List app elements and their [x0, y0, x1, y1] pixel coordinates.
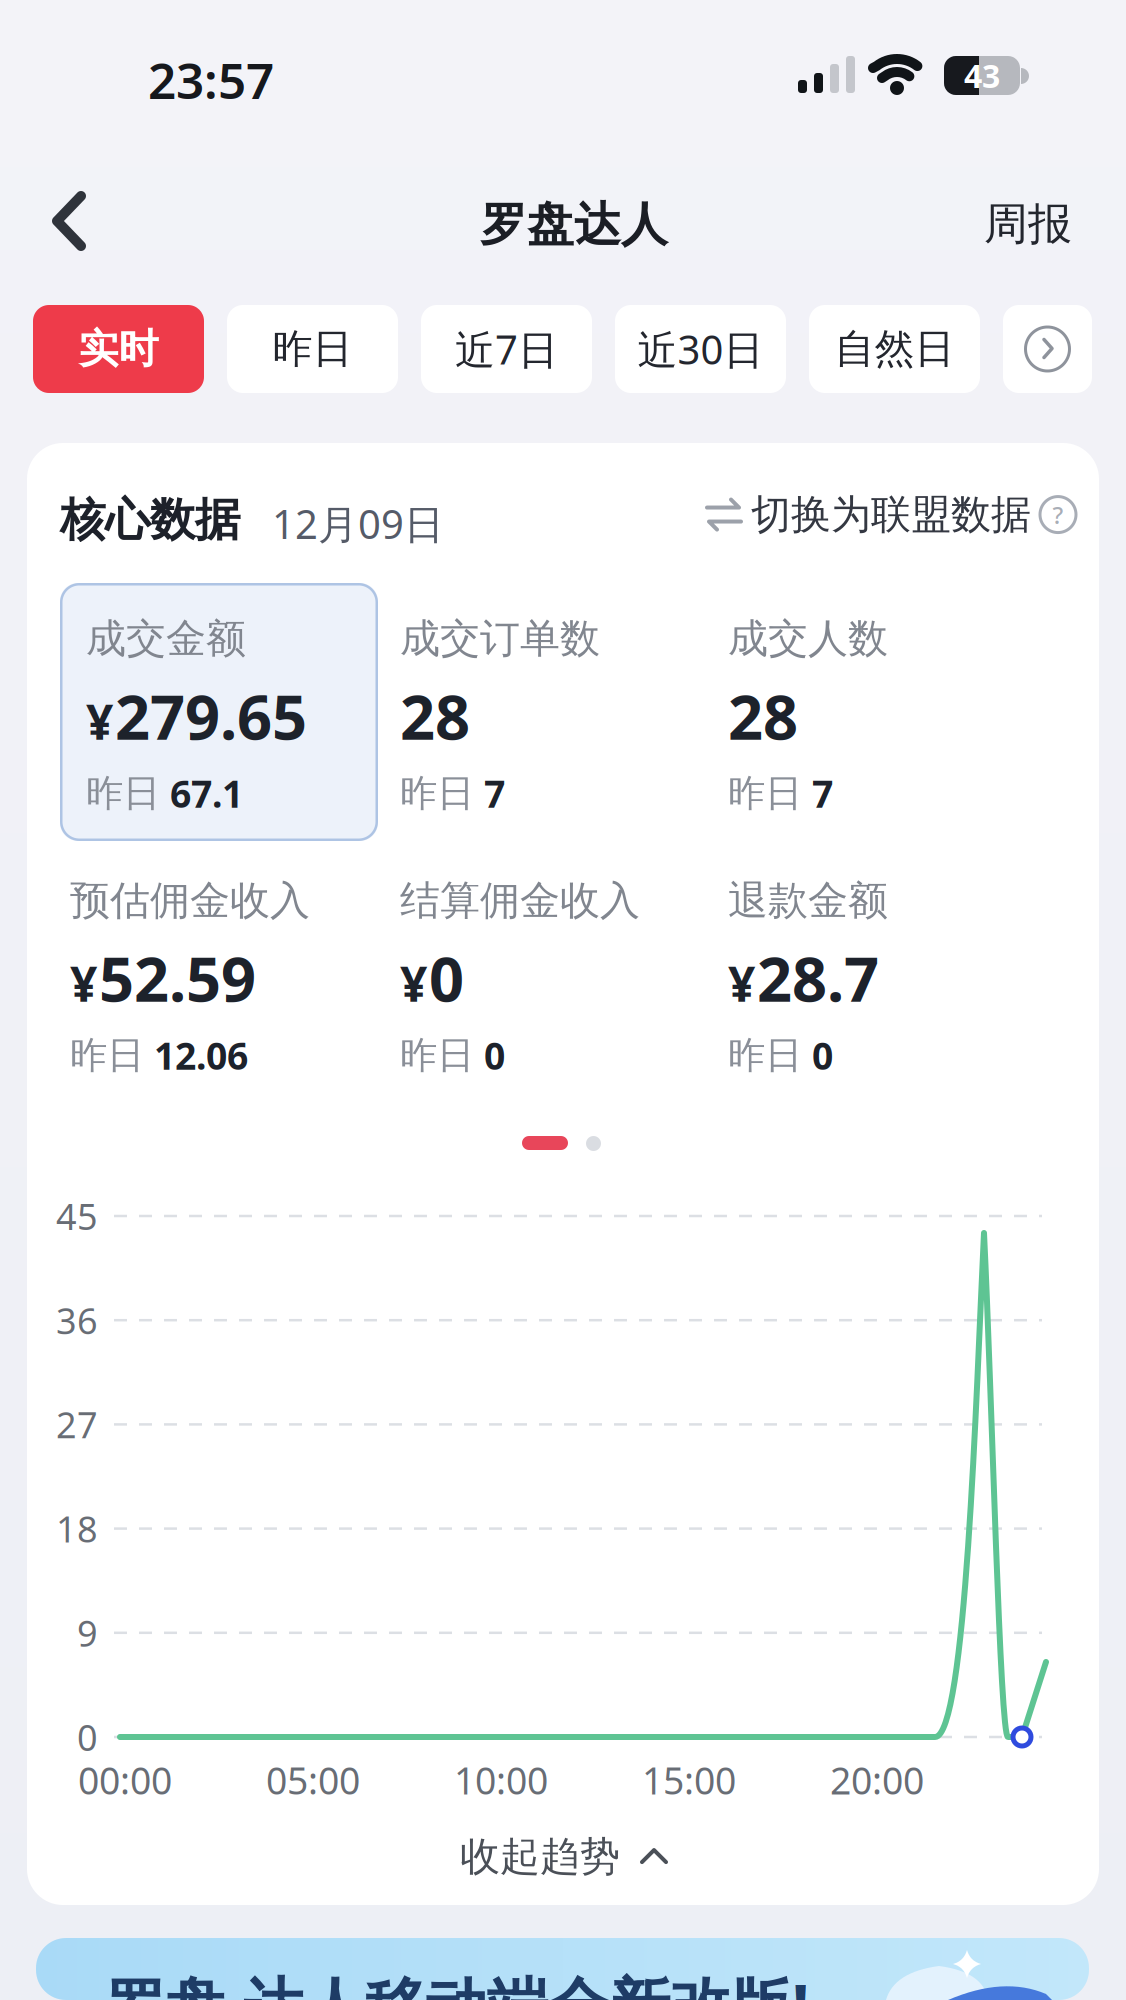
button[interactable]: 预估佣金收入: [70, 876, 310, 1080]
button[interactable]: 退款金额: [728, 876, 888, 1080]
staticText: 279.65: [115, 675, 307, 756]
staticText: 18: [56, 1505, 98, 1552]
button[interactable]: 更多筛选: [1003, 305, 1092, 393]
staticText: 昨日: [400, 770, 474, 816]
staticText: 周报: [984, 197, 1072, 251]
staticText: 52.59: [99, 937, 256, 1018]
button[interactable]: 近7日: [421, 305, 592, 393]
staticText: 昨日: [728, 1032, 802, 1078]
staticText: 7: [812, 769, 833, 818]
staticText: 7: [484, 769, 505, 818]
staticText: 昨日: [272, 324, 352, 373]
staticText: 昨日: [728, 770, 802, 816]
staticText: 10:00: [454, 1755, 548, 1805]
staticText: 23:57: [148, 47, 274, 112]
staticText: 00:00: [78, 1755, 172, 1805]
staticText: 罗盘·达人移动端全新改版!: [104, 1964, 809, 2000]
staticText: ¥: [728, 951, 755, 1015]
button[interactable]: 昨日: [227, 305, 398, 393]
staticText: 实时: [78, 324, 158, 373]
staticText: 自然日: [834, 324, 954, 373]
staticText: 成交人数: [728, 614, 888, 663]
button[interactable]: 结算佣金收入: [400, 876, 640, 1080]
staticText: 昨日: [86, 770, 160, 816]
staticText: 切换为联盟数据: [751, 490, 1031, 539]
staticText: 罗盘达人: [480, 196, 668, 253]
button[interactable]: 成交人数: [728, 614, 888, 818]
staticText: 核心数据: [60, 492, 240, 548]
button[interactable]: 返回: [43, 184, 95, 258]
staticText: 27: [56, 1400, 98, 1448]
staticText: 28.7: [757, 937, 879, 1018]
staticText: 成交金额: [86, 614, 246, 663]
staticText: 昨日: [70, 1032, 144, 1078]
button[interactable]: 切换为联盟数据: [705, 490, 1077, 539]
button[interactable]: 周报: [984, 197, 1072, 251]
staticText: 0: [812, 1031, 833, 1080]
button[interactable]: 成交订单数: [400, 614, 600, 818]
button[interactable]: 成交金额: [60, 583, 378, 841]
button[interactable]: 实时: [33, 305, 204, 393]
staticText: ?: [1052, 499, 1063, 530]
staticText: 36: [56, 1296, 98, 1344]
button[interactable]: 自然日: [809, 305, 980, 393]
staticText: 退款金额: [728, 876, 888, 925]
staticText: 12.06: [154, 1031, 248, 1080]
staticText: 昨日: [400, 1032, 474, 1078]
button[interactable]: 罗盘·达人移动端全新改版!: [36, 1938, 1089, 2000]
staticText: 成交订单数: [400, 614, 600, 663]
staticText: ¥: [400, 951, 427, 1015]
button[interactable]: 近30日: [615, 305, 786, 393]
staticText: 05:00: [266, 1755, 360, 1805]
staticText: 0: [484, 1031, 505, 1080]
staticText: 收起趋势: [460, 1832, 620, 1881]
staticText: 9: [77, 1609, 98, 1657]
staticText: 结算佣金收入: [400, 876, 640, 925]
staticText: ¥: [70, 951, 97, 1015]
staticText: 45: [56, 1192, 98, 1240]
staticText: 12月09日: [272, 497, 444, 550]
staticText: ¥: [86, 689, 113, 753]
staticText: 20:00: [830, 1755, 924, 1805]
staticText: 15:00: [642, 1755, 736, 1805]
staticText: 预估佣金收入: [70, 876, 310, 925]
staticText: 43: [964, 54, 1000, 97]
staticText: 近7日: [455, 322, 558, 375]
staticText: 28: [728, 675, 798, 756]
staticText: 28: [400, 675, 470, 756]
button[interactable]: 收起趋势: [460, 1832, 666, 1881]
staticText: 67.1: [170, 769, 243, 818]
staticText: 0: [77, 1713, 98, 1761]
staticText: 近30日: [637, 322, 763, 375]
staticText: 0: [429, 937, 464, 1018]
